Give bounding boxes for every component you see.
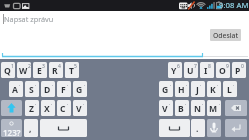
button[interactable]: Z	[25, 100, 39, 116]
button[interactable]: Space	[159, 119, 190, 137]
button[interactable]: D	[41, 81, 55, 97]
staticText: ·	[186, 82, 188, 89]
button[interactable]: .	[191, 119, 205, 137]
button[interactable]: C	[57, 100, 71, 116]
staticText: N	[194, 103, 201, 115]
button[interactable]: I	[200, 62, 214, 78]
staticText: A	[12, 84, 18, 96]
staticText: Q	[4, 65, 11, 77]
button[interactable]: T	[65, 62, 79, 78]
staticText: F	[61, 84, 66, 96]
staticText: 8	[208, 63, 211, 70]
button[interactable]: X	[41, 100, 55, 116]
staticText: 5	[74, 63, 77, 70]
button[interactable]: Y	[168, 62, 182, 78]
button[interactable]: G	[159, 81, 173, 97]
staticText: ·	[51, 101, 53, 108]
staticText: C	[60, 103, 66, 115]
staticText: Odeslat	[213, 31, 239, 40]
staticText: 9:08 AM	[219, 0, 249, 11]
staticText: ·	[67, 101, 69, 108]
button[interactable]: U	[184, 62, 198, 78]
staticText: ·	[185, 101, 187, 108]
button[interactable]: Backspace	[225, 100, 247, 116]
staticText: W	[19, 65, 28, 77]
staticText: I	[204, 65, 208, 77]
staticText: B	[178, 103, 184, 115]
staticText: X	[44, 103, 50, 115]
staticText: P	[235, 65, 241, 77]
staticText: .	[196, 123, 199, 135]
button[interactable]: A	[9, 81, 23, 97]
button[interactable]: L	[223, 81, 237, 97]
staticText: 0	[241, 63, 244, 70]
button[interactable]: O	[216, 62, 230, 78]
staticText: E	[37, 65, 42, 77]
button[interactable]: E	[33, 62, 47, 78]
button[interactable]: Odeslat	[210, 29, 241, 41]
button[interactable]: Shift	[1, 100, 22, 116]
staticText: H	[178, 84, 185, 96]
button[interactable]: Symbols	[1, 119, 22, 137]
button[interactable]: V	[159, 100, 173, 116]
staticText: ·	[52, 82, 54, 89]
staticText: 123?	[3, 127, 21, 138]
staticText: ·	[35, 101, 37, 108]
staticText: ·	[84, 82, 86, 89]
staticText: 9	[226, 63, 229, 70]
staticText: ·	[83, 101, 85, 108]
staticText: Y	[171, 65, 177, 77]
staticText: ·	[170, 82, 172, 89]
staticText: L	[227, 84, 232, 96]
button[interactable]: G	[73, 81, 87, 97]
staticText: G	[162, 84, 169, 96]
staticText: ·	[233, 82, 235, 89]
staticText: J	[196, 84, 199, 96]
staticText: ·	[202, 101, 204, 108]
button[interactable]: Space	[40, 119, 87, 137]
staticText: Napsat zprávu	[4, 14, 54, 24]
staticText: ,	[29, 123, 32, 135]
staticText: 7	[194, 63, 197, 70]
staticText: 4	[58, 63, 61, 70]
staticText: 3	[42, 63, 45, 70]
button[interactable]: N	[191, 100, 205, 116]
staticText: V	[76, 103, 82, 115]
staticText: Z	[29, 103, 34, 115]
staticText: T	[69, 65, 74, 77]
button[interactable]: P	[232, 62, 246, 78]
staticText: O	[219, 65, 226, 77]
button[interactable]: W	[17, 62, 31, 78]
button[interactable]: Enter	[225, 119, 247, 137]
staticText: G	[76, 84, 83, 96]
staticText: 2	[28, 63, 31, 70]
button[interactable]: H	[175, 81, 189, 97]
staticText: ·	[35, 82, 37, 89]
button[interactable]: S	[25, 81, 39, 97]
staticText: S	[29, 84, 34, 96]
staticText: ·	[67, 82, 69, 89]
staticText: U	[187, 65, 194, 77]
staticText: V	[162, 103, 168, 115]
button[interactable]: F	[57, 81, 71, 97]
button[interactable]: Voice input	[207, 119, 221, 137]
staticText: 1	[11, 63, 14, 70]
button[interactable]: R	[49, 62, 63, 78]
staticText: ·	[200, 82, 202, 89]
button[interactable]: J	[191, 81, 205, 97]
staticText: K	[210, 84, 216, 96]
staticText: ·	[19, 82, 21, 89]
staticText: ·	[217, 82, 219, 89]
staticText: ·	[169, 101, 171, 108]
staticText: R	[52, 65, 58, 77]
button[interactable]: M	[207, 100, 221, 116]
staticText: M	[209, 103, 218, 115]
button[interactable]: B	[175, 100, 189, 116]
button[interactable]: ,	[24, 119, 38, 137]
staticText: D	[44, 84, 51, 96]
staticText: 6	[177, 63, 180, 70]
button[interactable]: V	[73, 100, 87, 116]
staticText: ·	[219, 101, 221, 108]
button[interactable]: Q	[1, 62, 15, 78]
button[interactable]: K	[207, 81, 221, 97]
